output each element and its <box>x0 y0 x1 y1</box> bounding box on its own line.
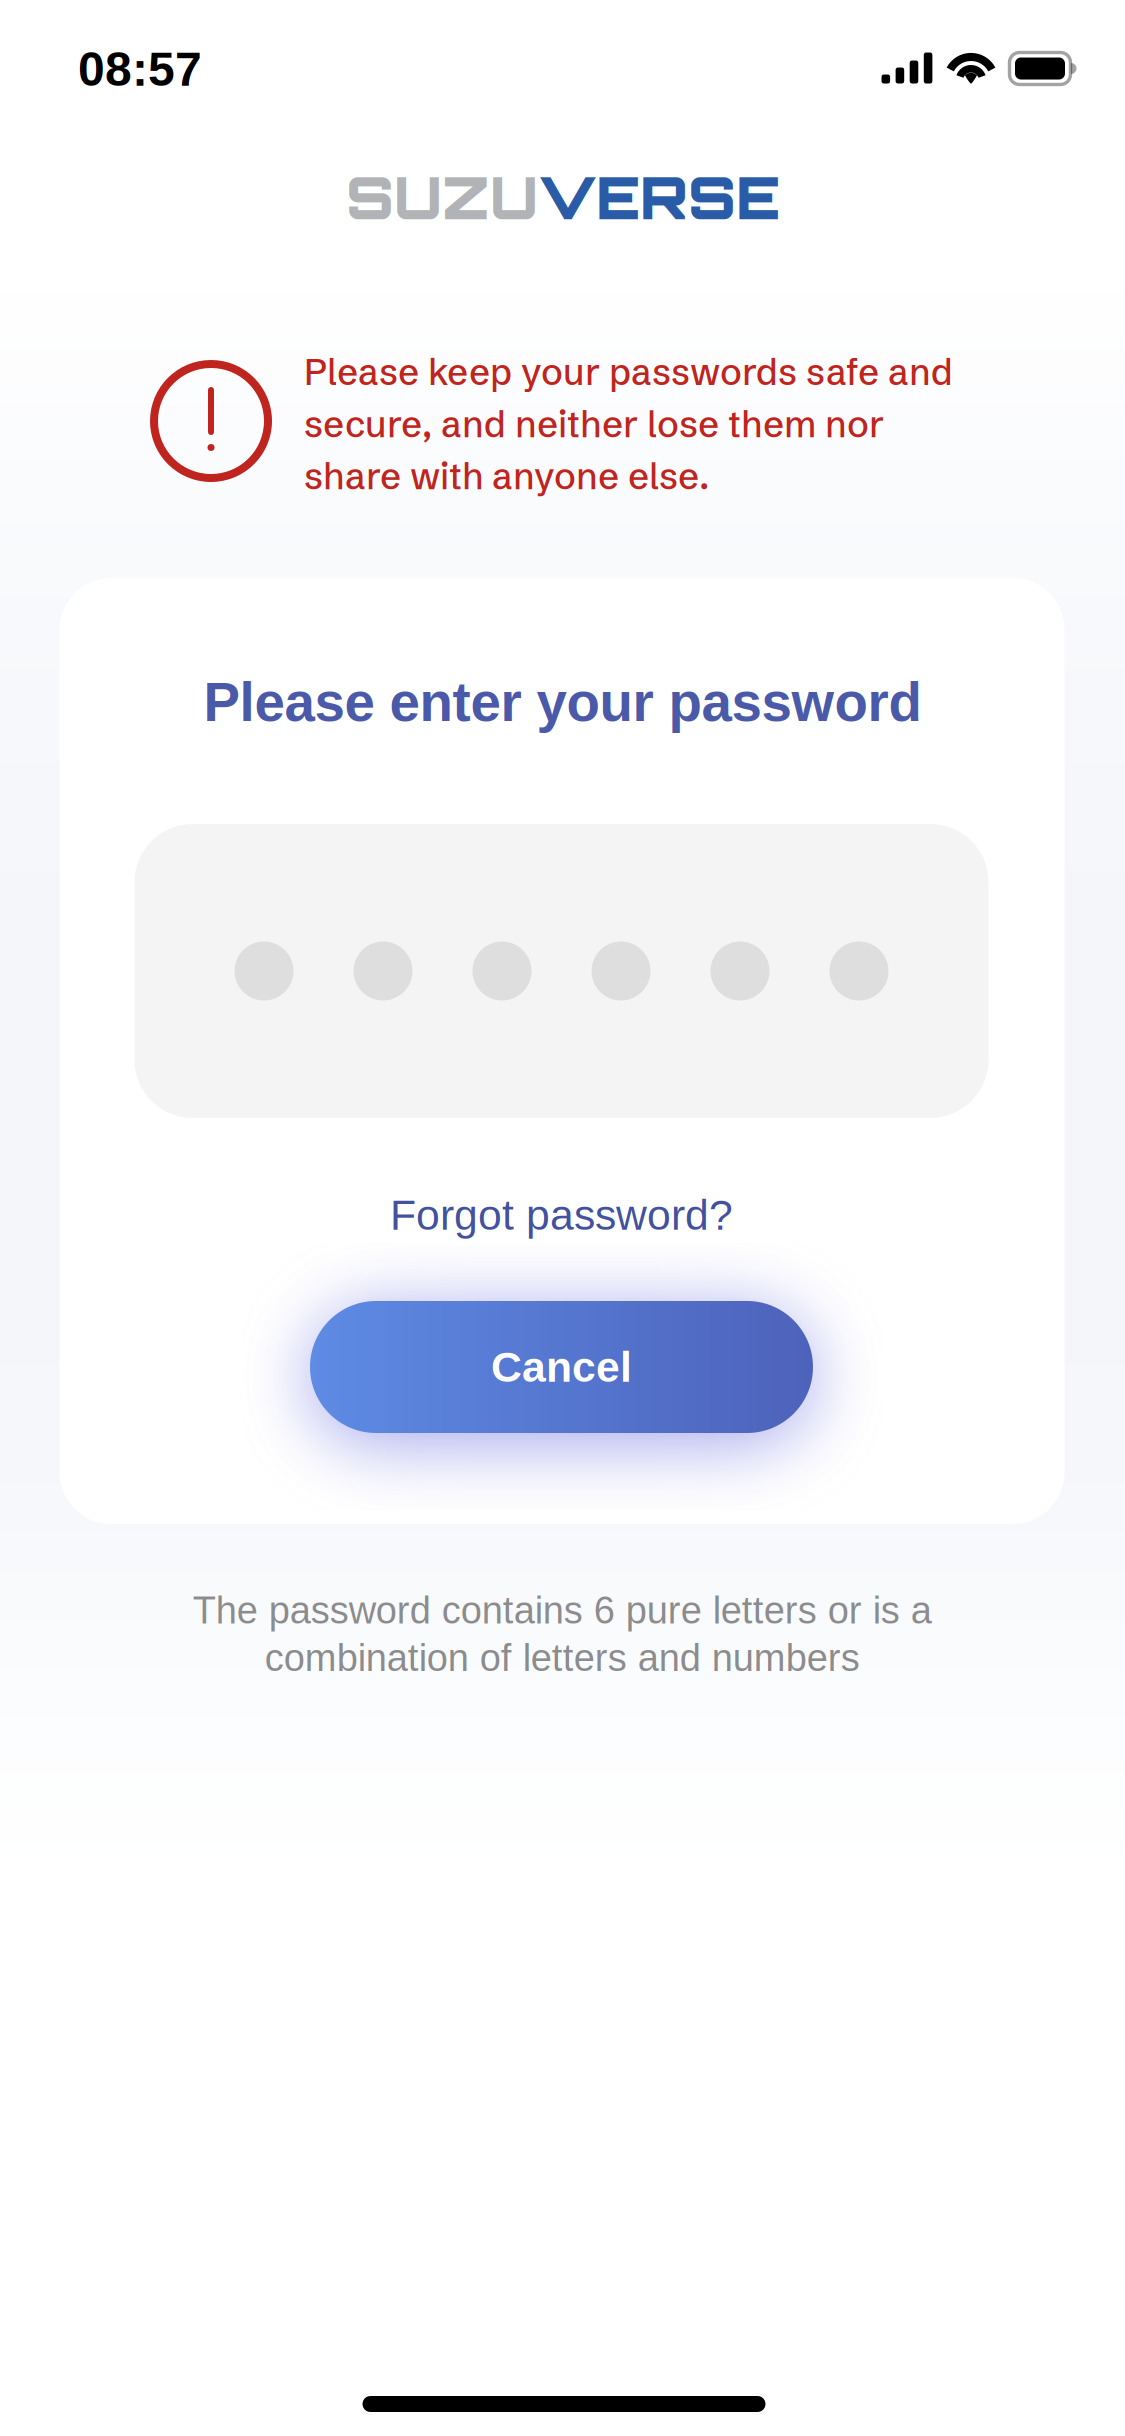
staticText: Please keep your passwords safe and secu… <box>304 349 953 499</box>
staticText: 08:57 <box>78 42 202 96</box>
staticText: The password contains 6 pure letters or … <box>192 1589 931 1679</box>
staticText: Forgot password? <box>390 1191 733 1239</box>
staticText: SUZU <box>346 161 538 233</box>
staticText: Cancel <box>491 1343 632 1391</box>
staticText: Please enter your password <box>203 671 921 733</box>
staticText: VERSE <box>538 161 780 233</box>
button[interactable]: Cancel <box>310 1301 813 1433</box>
button[interactable]: Forgot password? <box>361 1175 761 1255</box>
